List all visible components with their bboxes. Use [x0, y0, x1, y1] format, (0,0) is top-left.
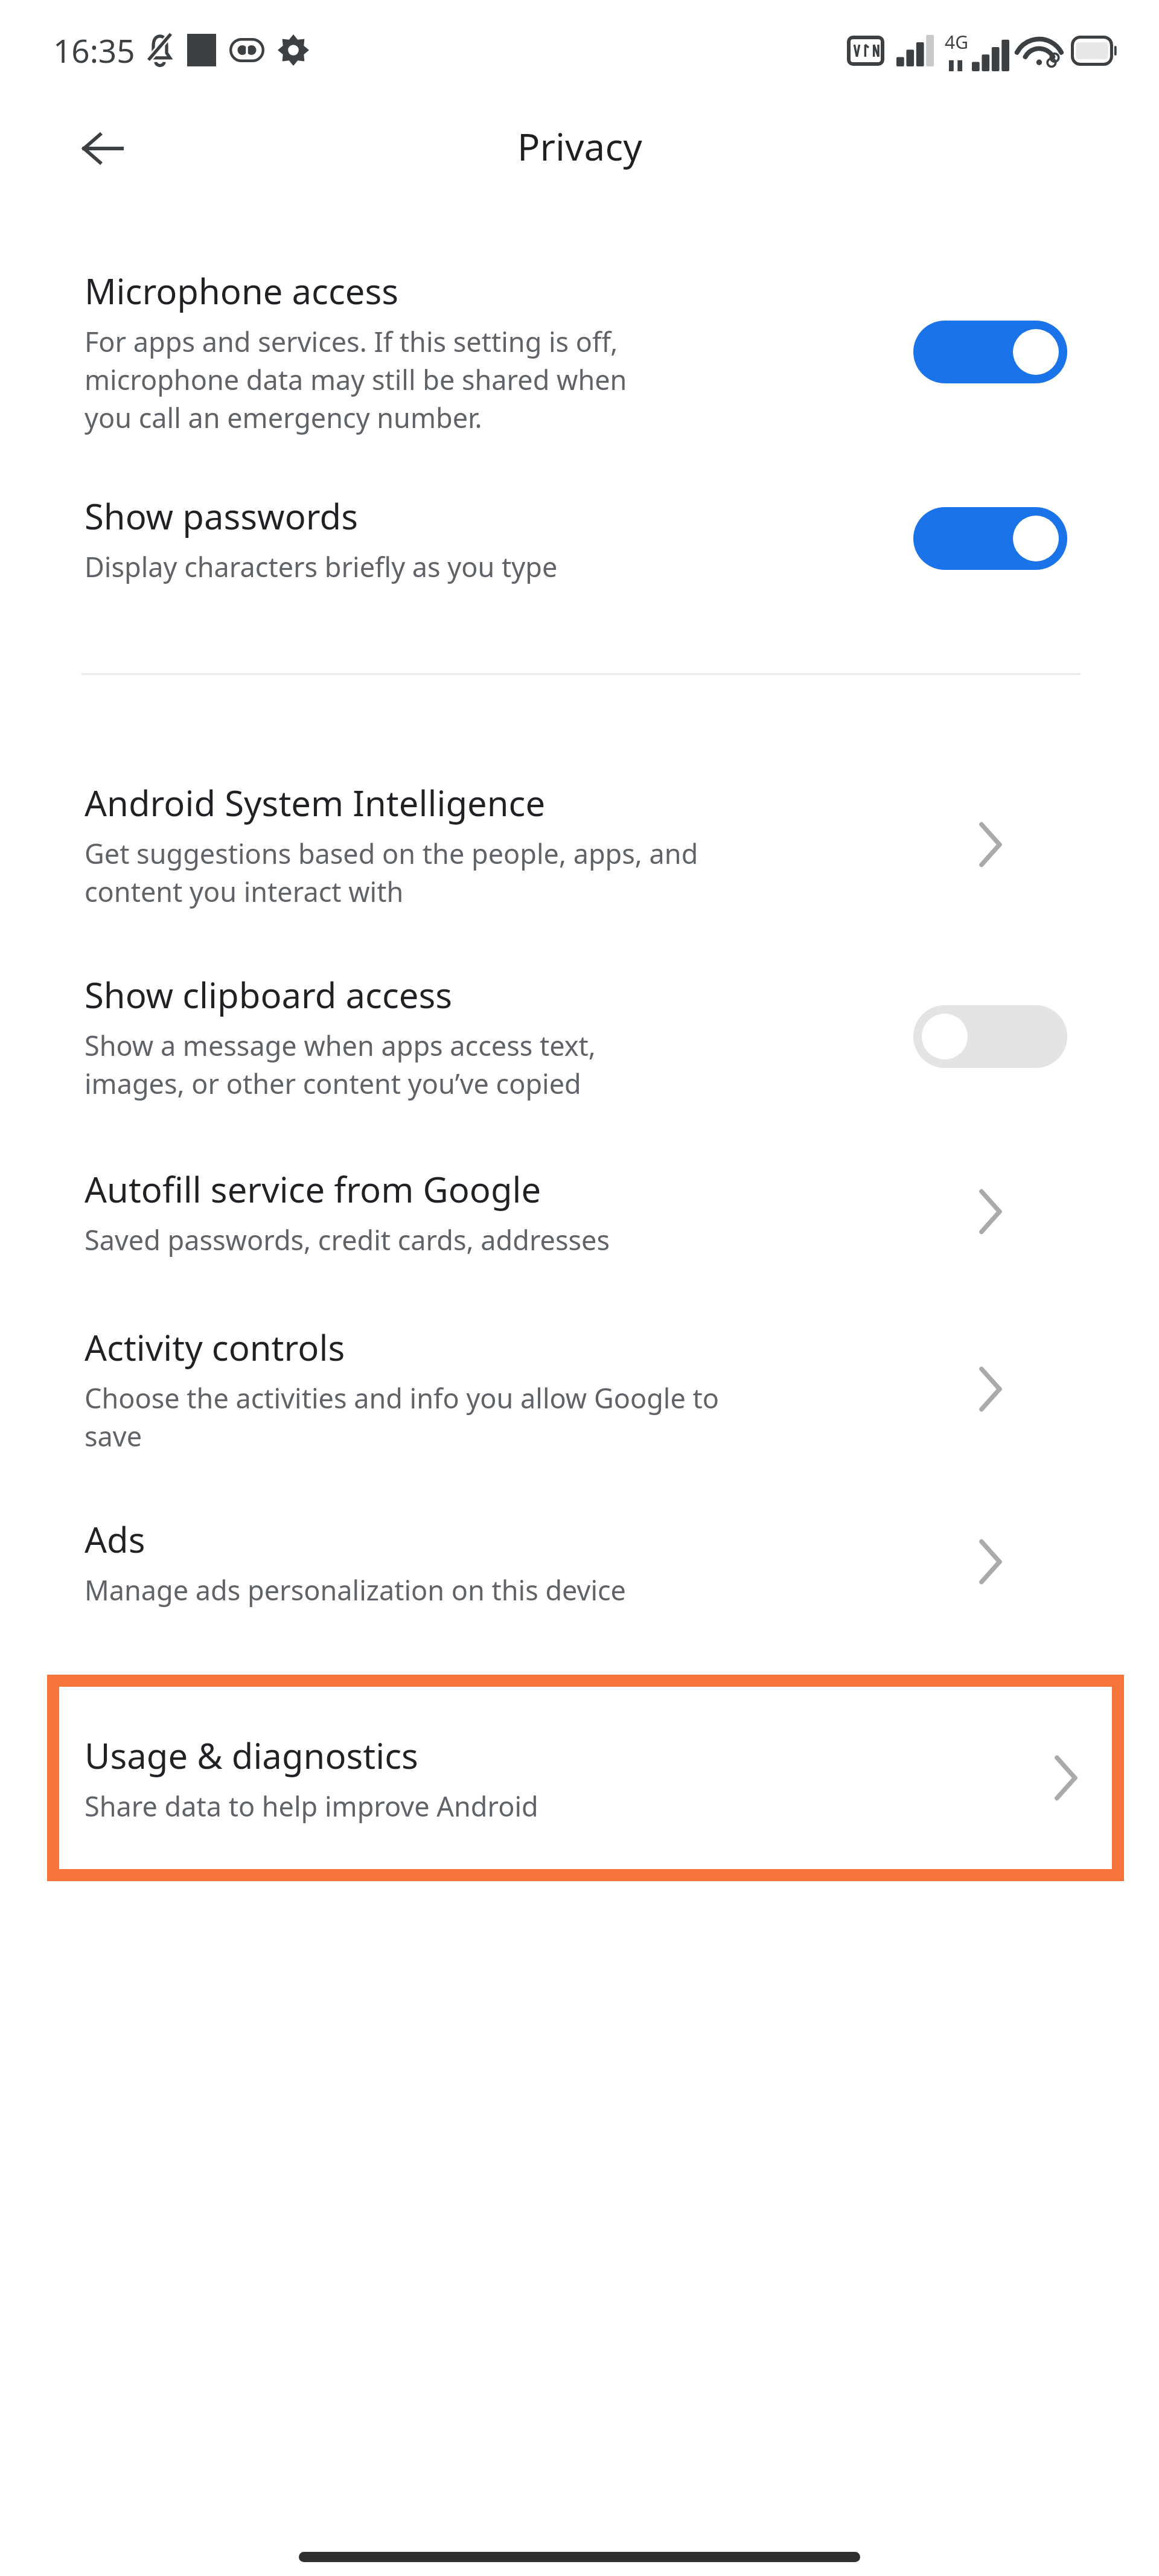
button[interactable]: Open — [1032, 1745, 1099, 1811]
button[interactable]: Show clipboard access — [0, 971, 1159, 1102]
staticText: Manage ads personalization on this devic… — [85, 1571, 626, 1608]
staticText: Saved passwords, credit cards, addresses — [85, 1221, 610, 1258]
button[interactable]: Microphone access — [0, 240, 1159, 436]
button[interactable]: Open — [957, 1356, 1023, 1422]
staticText: 4G — [945, 30, 968, 54]
button[interactable]: Back — [66, 112, 139, 185]
button[interactable]: Toggle off — [913, 1005, 1067, 1068]
staticText: Get suggestions based on the people, app… — [85, 835, 698, 910]
button[interactable]: Activity controls — [0, 1323, 1159, 1455]
button[interactable]: Show passwords — [0, 492, 1159, 585]
button[interactable]: Usage & diagnostics — [85, 1675, 1099, 1881]
button[interactable]: Open — [957, 1178, 1023, 1245]
staticText: For apps and services. If this setting i… — [85, 323, 627, 436]
button[interactable]: Android System Intelligence — [0, 779, 1159, 910]
staticText: Usage & diagnostics — [85, 1731, 418, 1779]
button[interactable]: Autofill service from Google — [0, 1165, 1159, 1258]
staticText: Ads — [85, 1515, 145, 1563]
button[interactable]: Toggle on — [913, 507, 1067, 570]
staticText: Share data to help improve Android — [85, 1788, 538, 1824]
staticText: Activity controls — [85, 1323, 345, 1371]
staticText: Show passwords — [85, 492, 358, 540]
staticText: Microphone access — [85, 267, 399, 315]
staticText: 16:35 — [53, 28, 135, 72]
button[interactable]: Toggle on — [913, 321, 1067, 383]
button[interactable]: Open — [957, 1529, 1023, 1595]
staticText: Android System Intelligence — [85, 779, 546, 826]
staticText: Show clipboard access — [85, 971, 453, 1018]
button[interactable]: Ads — [0, 1515, 1159, 1608]
button[interactable]: Open — [957, 811, 1023, 878]
staticText: Show a message when apps access text, im… — [85, 1027, 596, 1102]
staticText: Display characters briefly as you type — [85, 548, 558, 585]
staticText: Choose the activities and info you allow… — [85, 1379, 719, 1455]
staticText: Autofill service from Google — [85, 1165, 541, 1213]
staticText: Privacy — [517, 121, 642, 171]
